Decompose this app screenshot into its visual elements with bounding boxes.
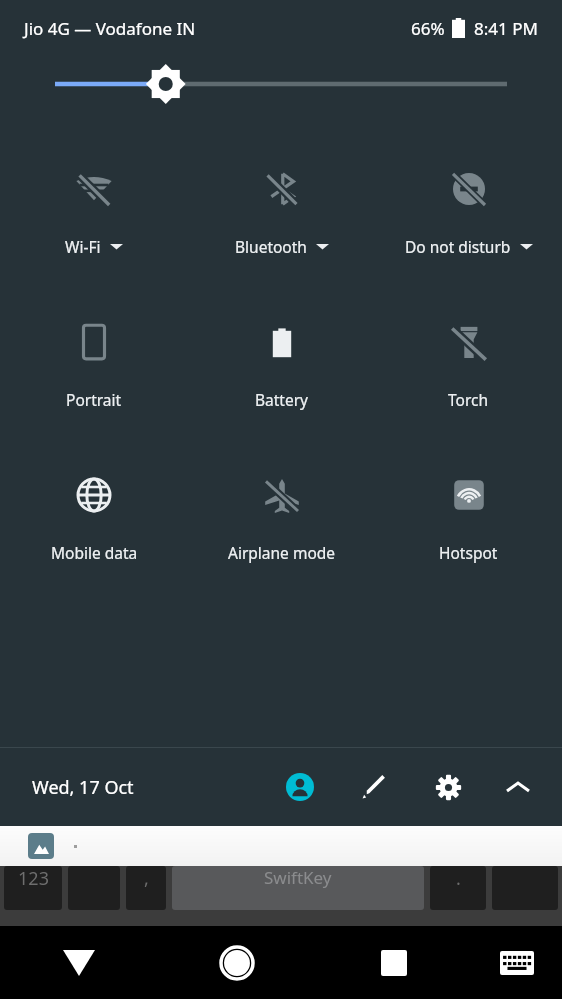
staticText: . <box>456 866 461 891</box>
button[interactable]: Bluetooth <box>188 166 375 257</box>
staticText: Hotspot <box>439 542 498 563</box>
staticText: Portrait <box>66 389 122 410</box>
staticText: Wi-Fi <box>65 236 101 257</box>
button[interactable]: , <box>126 866 166 910</box>
staticText: Mobile data <box>51 542 138 563</box>
staticText: SwiftKey <box>264 866 332 889</box>
button[interactable]: 123 <box>4 866 62 910</box>
button[interactable]: Portrait <box>0 319 188 410</box>
button[interactable]: SwiftKey <box>172 866 424 910</box>
staticText: Torch <box>448 389 489 410</box>
button[interactable]: Recent apps <box>315 926 472 999</box>
button[interactable]: Switch keyboard <box>472 926 562 999</box>
button[interactable]: Settings <box>426 765 470 809</box>
staticText: 66% <box>411 17 445 40</box>
button[interactable]: Do not disturb <box>375 166 562 257</box>
staticText: 123 <box>18 866 49 891</box>
staticText: , <box>144 866 149 891</box>
staticText: Jio 4G — Vodafone IN <box>24 17 196 40</box>
button[interactable]: Brightness <box>55 56 507 112</box>
button[interactable]: Airplane mode <box>188 472 375 563</box>
button[interactable] <box>0 826 562 866</box>
button[interactable]: Mobile data <box>0 472 188 563</box>
button[interactable]: User <box>278 765 322 809</box>
button[interactable]: Battery <box>188 319 375 410</box>
button[interactable]: Edit <box>352 765 396 809</box>
button[interactable]: Collapse <box>496 765 540 809</box>
staticText: Wed, 17 Oct <box>32 775 134 800</box>
button[interactable]: Home <box>158 926 315 999</box>
staticText: Bluetooth <box>235 236 307 257</box>
button[interactable]: Wi-Fi <box>0 166 188 257</box>
staticText: Airplane mode <box>228 542 336 563</box>
button[interactable]: Hotspot <box>375 472 562 563</box>
button[interactable]: Torch <box>375 319 562 410</box>
staticText: Do not disturb <box>405 236 511 257</box>
button[interactable]: Back <box>0 926 158 999</box>
staticText: Battery <box>255 389 309 410</box>
staticText: 8:41 PM <box>474 17 538 40</box>
